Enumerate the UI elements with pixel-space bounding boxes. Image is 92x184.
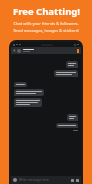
button[interactable]: Voice message xyxy=(13,178,17,182)
staticText: Free Chatting! xyxy=(13,5,80,18)
staticText: Chat with your friends & followers. Send… xyxy=(13,21,79,33)
button[interactable] xyxy=(67,114,78,121)
button[interactable]: Write message here xyxy=(19,178,71,182)
button[interactable] xyxy=(56,123,78,128)
button[interactable]: Attach image xyxy=(71,179,74,182)
button[interactable] xyxy=(14,89,44,96)
button[interactable] xyxy=(14,98,42,107)
button[interactable]: Back xyxy=(11,47,81,54)
button[interactable] xyxy=(54,70,78,77)
other: Back xyxy=(13,49,16,52)
button[interactable]: More options xyxy=(77,49,79,53)
button[interactable]: Send sticker xyxy=(76,179,79,182)
button[interactable] xyxy=(14,82,27,87)
staticText: Write message here xyxy=(19,178,49,182)
button[interactable] xyxy=(66,61,78,68)
